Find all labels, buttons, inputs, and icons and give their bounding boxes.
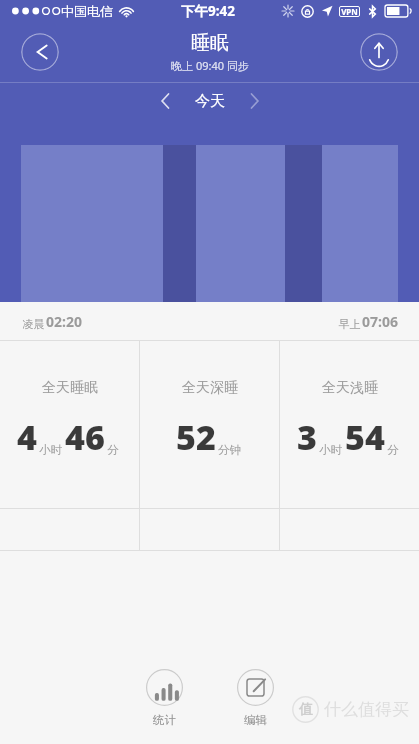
button[interactable]: 全天浅睡 xyxy=(280,341,419,508)
staticText: 凌晨 xyxy=(21,316,46,331)
staticText: 今天 xyxy=(195,92,225,111)
staticText: 值 xyxy=(299,701,313,719)
staticText: 全天浅睡 xyxy=(322,379,378,397)
button[interactable]: 全天睡眠 xyxy=(0,341,139,508)
staticText: 分 xyxy=(387,443,399,457)
staticText: 编辑 xyxy=(244,713,267,727)
staticText: 全天深睡 xyxy=(182,379,238,397)
staticText: 统计 xyxy=(153,713,176,727)
staticText: 07:06 xyxy=(362,312,398,331)
staticText: 睡眠 xyxy=(191,31,229,55)
button[interactable]: 前一天 xyxy=(149,84,183,118)
staticText: 46 xyxy=(65,414,105,460)
staticText: 中国电信 xyxy=(61,3,113,19)
staticText: 分 xyxy=(107,443,119,457)
button[interactable]: 统计 xyxy=(140,667,189,729)
staticText: 54 xyxy=(345,414,385,460)
staticText: 小时 xyxy=(39,443,62,457)
staticText: 4 xyxy=(17,414,37,460)
staticText: 全天睡眠 xyxy=(42,379,98,397)
button[interactable]: 分享 xyxy=(360,33,398,71)
staticText: 52 xyxy=(176,414,216,460)
staticText: 下午9:42 xyxy=(181,2,235,20)
button[interactable]: 今天 xyxy=(195,92,225,111)
staticText: 3 xyxy=(297,414,317,460)
staticText: 晚上 09:40 同步 xyxy=(171,58,249,73)
staticText: 02:20 xyxy=(46,312,82,331)
button[interactable]: 编辑 xyxy=(231,667,280,729)
staticText: 什么值得买 xyxy=(324,699,409,720)
button[interactable]: 返回 xyxy=(21,33,59,71)
staticText: 分钟 xyxy=(218,443,241,457)
staticText: 早上 xyxy=(337,316,362,331)
button[interactable]: 全天深睡 xyxy=(140,341,279,508)
staticText: 小时 xyxy=(319,443,342,457)
staticText: VPN xyxy=(341,6,358,17)
button[interactable]: 后一天 xyxy=(237,84,271,118)
